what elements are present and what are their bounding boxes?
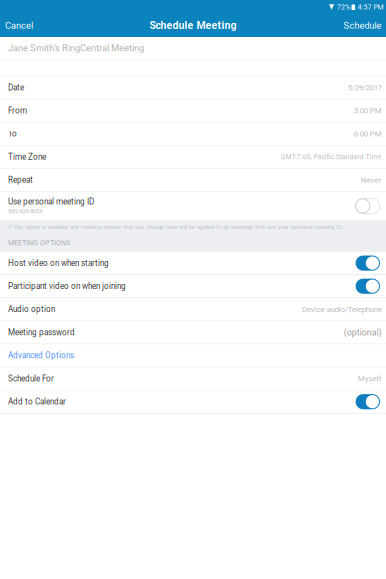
button[interactable]: Time Zone — [0, 146, 386, 168]
staticText: Schedule — [343, 20, 381, 31]
staticText: Jane Smith’s RingCentral Meeting — [8, 42, 144, 53]
staticText: GMT-7:00, Pacific Standard Time — [281, 153, 382, 161]
button[interactable]: Schedule For — [0, 367, 386, 390]
button[interactable]: Schedule — [339, 14, 386, 37]
staticText: 72% — [337, 3, 350, 11]
staticText: (optional) — [344, 327, 382, 337]
staticText: If this option is enabled, any meeting o… — [8, 223, 344, 230]
button[interactable]: Repeat — [0, 169, 386, 191]
staticText: To — [8, 129, 17, 138]
staticText: 5/29/2017 — [348, 83, 382, 92]
button[interactable]: Add to Calendar — [0, 390, 386, 413]
staticText: Advanced Options — [8, 351, 74, 360]
staticText: MEETING OPTIONS — [8, 239, 70, 247]
staticText: Repeat — [8, 175, 33, 185]
staticText: Meeting password — [8, 328, 75, 337]
button[interactable]: Host video on when starting — [0, 252, 386, 274]
button[interactable]: Cancel — [0, 14, 38, 37]
staticText: Never — [361, 175, 382, 185]
button[interactable]: Date — [0, 76, 386, 99]
staticText: Use personal meeting ID — [8, 197, 94, 206]
button[interactable]: Meeting password — [0, 321, 386, 344]
staticText: Host video on when starting — [8, 258, 109, 268]
button[interactable]: Advanced Options — [0, 344, 386, 367]
staticText: Myself — [358, 374, 382, 383]
staticText: Date — [8, 83, 24, 92]
staticText: 5:00 PM — [354, 106, 382, 115]
button[interactable]: Use personal meeting ID — [0, 192, 386, 220]
button[interactable]: Audio option — [0, 298, 386, 320]
staticText: Add to Calendar — [8, 397, 66, 406]
staticText: 6:00 PM — [354, 129, 382, 138]
staticText: Time Zone — [8, 152, 46, 162]
staticText: 4:57 PM — [357, 3, 383, 11]
button[interactable]: Jane Smith’s RingCentral Meeting — [0, 37, 386, 59]
staticText: Cancel — [5, 20, 33, 31]
staticText: 595-923-8653 — [8, 208, 42, 215]
staticText: Schedule Meeting — [149, 19, 236, 32]
button[interactable]: To — [0, 123, 386, 145]
staticText: Device audio/Telephone — [302, 305, 382, 314]
staticText: From — [8, 106, 27, 115]
staticText: Participant video on when joining — [8, 281, 126, 291]
button[interactable]: Participant video on when joining — [0, 275, 386, 297]
staticText: Schedule For — [8, 374, 54, 383]
button[interactable]: From — [0, 99, 386, 122]
staticText: Audio option — [8, 304, 55, 314]
